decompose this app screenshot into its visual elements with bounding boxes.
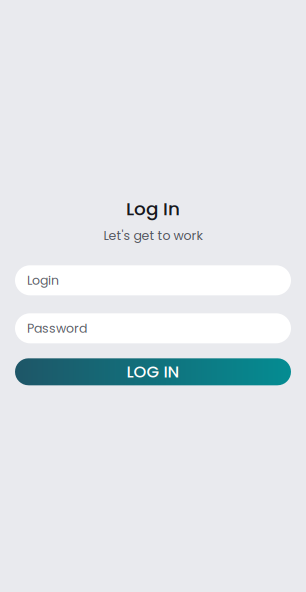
- staticText: Login: [27, 271, 59, 289]
- staticText: Log In: [126, 196, 180, 222]
- button[interactable]: Password: [15, 313, 291, 343]
- button[interactable]: LOG IN: [15, 358, 291, 385]
- button[interactable]: Login: [15, 265, 291, 295]
- staticText: Password: [27, 319, 87, 337]
- staticText: LOG IN: [126, 360, 179, 383]
- staticText: Let's get to work: [103, 227, 202, 244]
